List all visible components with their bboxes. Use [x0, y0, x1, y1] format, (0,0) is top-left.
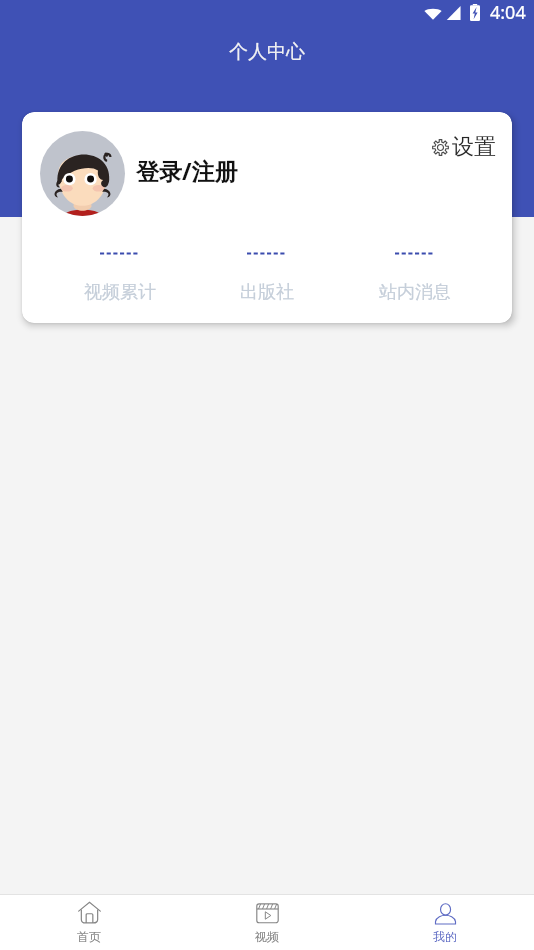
- button[interactable]: 视频: [178, 896, 356, 949]
- button[interactable]: 站内消息: [365, 246, 465, 306]
- staticText: 出版社: [240, 281, 294, 304]
- button[interactable]: 视频累计: [70, 246, 170, 306]
- staticText: 视频: [255, 929, 279, 944]
- button[interactable]: 首页: [0, 896, 178, 949]
- button[interactable]: 我的: [356, 896, 534, 949]
- staticText: 设置: [452, 133, 496, 161]
- button[interactable]: 出版社: [217, 246, 317, 306]
- staticText: 个人中心: [229, 40, 305, 64]
- staticText: 视频累计: [84, 281, 156, 304]
- staticText: 登录/注册: [136, 155, 238, 186]
- other: 设置: [432, 139, 449, 156]
- staticText: 首页: [77, 929, 101, 944]
- staticText: 我的: [433, 929, 457, 944]
- staticText: 站内消息: [379, 281, 451, 304]
- button[interactable]: 登录/注册: [22, 112, 254, 226]
- staticText: 4:04: [490, 0, 526, 25]
- button[interactable]: 设置: [422, 112, 512, 171]
